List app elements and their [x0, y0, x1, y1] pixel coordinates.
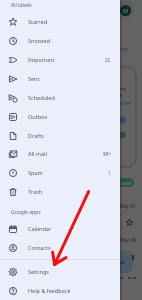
staticText: Settings — [28, 268, 49, 275]
button[interactable]: Calendar — [0, 219, 120, 238]
staticText: for your — [104, 92, 123, 99]
staticText: Scheduled — [28, 94, 55, 101]
staticText: May 29 — [119, 237, 136, 244]
staticText: Sent — [28, 75, 40, 82]
button[interactable]: Scheduled — [0, 88, 120, 107]
staticText: 22 — [105, 57, 111, 63]
button[interactable]: Important — [0, 50, 120, 69]
button[interactable]: Sent — [0, 69, 120, 88]
button[interactable]: ose — [98, 251, 133, 273]
staticText: Google apps — [11, 209, 41, 216]
button[interactable]: Starred — [0, 12, 120, 31]
button[interactable]: Spam — [0, 163, 120, 182]
button[interactable]: Learn more — [104, 100, 132, 107]
staticText: Contacts — [28, 244, 51, 251]
staticText: new here — [104, 86, 126, 93]
staticText: 99+ — [103, 151, 111, 157]
staticText: All mail — [28, 150, 47, 157]
button[interactable]: Trash — [0, 182, 120, 201]
staticText: Help & feedback — [28, 287, 71, 294]
button[interactable]: Outbox — [0, 107, 120, 126]
staticText: M — [123, 7, 128, 14]
button[interactable]: Contacts — [0, 238, 120, 257]
button[interactable]: Help & feedback — [0, 281, 120, 300]
button[interactable]: Drafts — [0, 126, 120, 145]
staticText: 1 — [108, 170, 111, 176]
other: Star — [126, 219, 133, 226]
staticText: 2 new — [116, 179, 132, 186]
staticText: ose — [115, 258, 125, 266]
staticText: Important — [28, 56, 55, 63]
button[interactable]: Settings — [0, 262, 120, 281]
staticText: Learn more — [104, 100, 132, 107]
staticText: Outbox — [28, 113, 48, 120]
button[interactable]: Dismiss — [106, 45, 128, 53]
staticText: May 31 — [119, 203, 136, 210]
staticText: Calendar — [28, 225, 52, 232]
staticText: Dismiss — [106, 45, 128, 53]
staticText: Starred — [28, 18, 48, 25]
button[interactable]: All mail — [0, 144, 120, 163]
button[interactable]: Snoozed — [0, 31, 120, 50]
button[interactable]: Account — [120, 5, 131, 16]
staticText: Snoozed — [28, 37, 51, 44]
staticText: Trash — [28, 188, 43, 195]
staticText: Drafts — [28, 132, 44, 139]
staticText: All labels — [11, 2, 32, 9]
button[interactable]: 2 new — [106, 178, 134, 187]
staticText: Spam — [28, 169, 43, 176]
